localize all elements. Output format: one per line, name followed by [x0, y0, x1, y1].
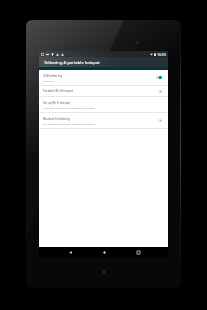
button[interactable]: Turn on — [156, 89, 162, 94]
staticText: Bluetooth tethering — [43, 117, 70, 121]
button[interactable]: Back — [65, 247, 75, 258]
button[interactable]: Set up Wi-Fi hotspot — [39, 97, 168, 112]
staticText: 10:05 — [157, 52, 167, 57]
button[interactable]: Turn off — [156, 75, 162, 80]
staticText: Not sharing this tablet's Internet conne… — [43, 122, 95, 125]
staticText: Tethering & portable hotspot — [44, 60, 100, 65]
staticText: Portable Wi-Fi hotspot — [43, 89, 74, 93]
staticText: Tethered — [43, 79, 54, 82]
button[interactable]: Turn on — [156, 118, 162, 123]
button[interactable]: Bluetooth tethering — [39, 113, 168, 128]
button[interactable]: USB tethering — [39, 70, 168, 85]
button[interactable]: Home — [99, 247, 109, 258]
button[interactable]: Tethering & portable hotspot — [39, 57, 168, 67]
button[interactable]: Portable Wi-Fi hotspot — [39, 86, 168, 96]
staticText: AndroidAP WPA2 PSK portable Wi-Fi hotspo… — [43, 106, 95, 109]
button[interactable]: Recent apps — [133, 247, 143, 258]
staticText: USB tethering — [43, 74, 62, 78]
staticText: Set up Wi-Fi hotspot — [43, 101, 71, 105]
